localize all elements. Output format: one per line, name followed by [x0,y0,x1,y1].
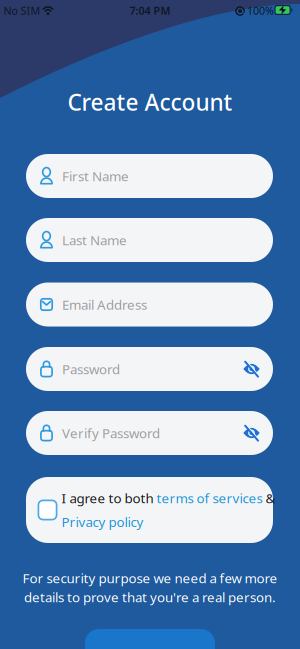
staticText: terms of services [156,489,262,507]
button[interactable]: Email Address [26,282,273,326]
staticText: For security purpose we need a few more [22,569,277,587]
staticText: details to prove that you're a real pers… [24,588,276,606]
staticText: No SIM [3,3,40,18]
staticText: Verify Password [62,424,160,442]
staticText: 7:04 PM [129,3,170,18]
button[interactable]: I agree to both [26,477,273,543]
staticText: Create Account [67,87,232,117]
button[interactable]: Last Name [26,218,273,262]
staticText: Last Name [62,231,127,249]
button[interactable]: First Name [26,154,273,198]
staticText: Email Address [62,296,147,313]
staticText: Password [62,360,120,378]
staticText: & [262,489,275,507]
button[interactable]: Verify Password [26,411,273,455]
staticText: 100% [247,3,274,18]
button[interactable]: Password [26,347,273,391]
staticText: I agree to both [61,489,156,507]
staticText: First Name [62,167,129,185]
staticText: Privacy policy [61,513,143,531]
button[interactable] [85,629,215,649]
